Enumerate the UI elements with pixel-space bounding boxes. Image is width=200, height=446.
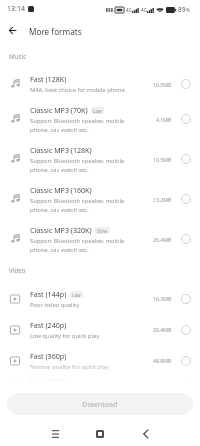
staticText: Video [9,266,26,275]
staticText: Low quality for quick play [30,332,100,340]
staticText: 48.8MB [153,357,172,364]
staticText: Support Bluetooth speaker, mobile phone,… [30,237,130,254]
staticText: Classic MP3 (70K) [30,105,88,115]
staticText: Support Bluetooth speaker, mobile phone,… [30,157,130,174]
button[interactable]: Fast (128K) [0,69,200,99]
staticText: Normal quality for quick play [30,363,109,371]
staticText: More formats [29,26,82,37]
staticText: Low [93,108,102,114]
staticText: Classic MP3 (160K) [30,185,92,195]
staticText: Poor video quality [30,301,80,309]
button[interactable]: Classic MP3 (128K) [0,139,200,179]
staticText: Low [72,292,81,298]
button[interactable]: Classic MP3 (320K) [0,219,200,259]
button[interactable]: Classic MP3 (160K) [0,179,200,219]
staticText: Fast (128K) [30,74,67,84]
staticText: Classic MP3 (128K) [30,145,92,155]
staticText: 4.1MB [156,116,172,123]
staticText: 4G [141,7,147,13]
button[interactable]: Home [88,423,112,445]
staticText: 10.5MB [153,156,172,163]
staticText: 10.5MB [153,81,172,88]
staticText: 4G [126,7,132,13]
staticText: 13:14 [7,4,25,14]
button[interactable]: Back [133,423,157,445]
button[interactable]: Recent apps [43,423,67,445]
button[interactable]: Back [5,23,20,38]
staticText: Fast (144p) [30,289,67,299]
staticText: Music [9,52,27,61]
button[interactable]: Download [7,393,193,415]
staticText: 16.3MB [153,295,172,302]
staticText: % [186,7,190,13]
staticText: Fast (240p) [30,320,67,330]
staticText: 89 [178,5,186,14]
staticText: 20.4MB [153,326,172,333]
staticText: Support Bluetooth speaker, mobile phone,… [30,117,130,134]
staticText: 26.4MB [153,236,172,243]
button[interactable]: Fast (240p) [0,314,200,345]
button[interactable]: Classic MP3 (70K) [0,99,200,139]
staticText: M4A, best choice for mobile phone [30,86,125,94]
staticText: Slow [97,228,108,234]
staticText: Classic MP3 (320K) [30,225,92,235]
staticText: 13.2MB [153,196,172,203]
button[interactable]: Fast (144p) [0,283,200,314]
button[interactable]: Fast (360p) [0,345,200,376]
staticText: Download [82,399,118,409]
staticText: Support Bluetooth speaker, mobile phone,… [30,197,130,214]
staticText: Fast (360p) [30,351,67,361]
